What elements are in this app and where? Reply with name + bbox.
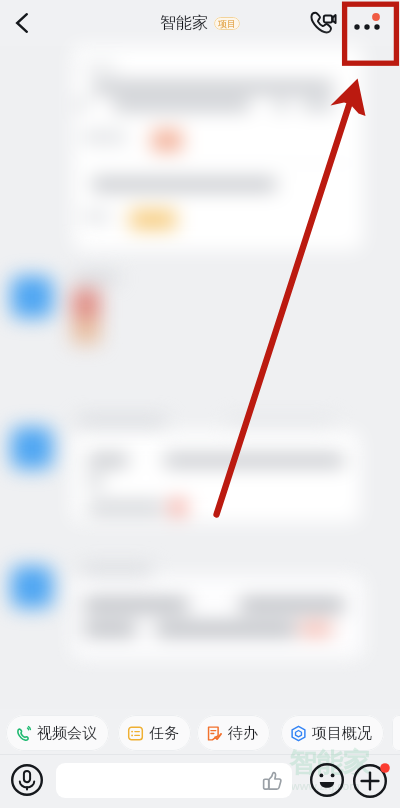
button[interactable]: 待办 bbox=[197, 715, 270, 751]
button[interactable]: More options bbox=[346, 3, 388, 43]
button[interactable]: Voice input bbox=[11, 764, 43, 796]
button[interactable]: More actions bbox=[352, 760, 392, 800]
staticText: www.znj.com bbox=[291, 778, 360, 793]
staticText: 智能家 bbox=[289, 746, 370, 780]
button[interactable]: Back bbox=[0, 0, 44, 46]
button[interactable]: 任务 bbox=[118, 715, 191, 751]
button[interactable]: 项目概况 bbox=[281, 715, 384, 751]
staticText: 待办 bbox=[228, 724, 258, 743]
button[interactable]: 视频会议 bbox=[6, 715, 109, 751]
staticText: 智能家 bbox=[160, 13, 208, 33]
button[interactable]: Video call bbox=[301, 1, 345, 45]
staticText: 项目 bbox=[218, 18, 236, 29]
staticText: 任务 bbox=[149, 724, 179, 743]
staticText: 项目概况 bbox=[312, 724, 372, 743]
button[interactable]: Emoji bbox=[310, 763, 344, 797]
button[interactable] bbox=[56, 763, 292, 798]
staticText: 视频会议 bbox=[37, 724, 97, 743]
button[interactable]: 日程 bbox=[392, 715, 400, 751]
